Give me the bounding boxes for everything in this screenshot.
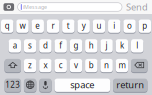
- button[interactable]: k: [116, 39, 128, 53]
- staticText: Send: [126, 1, 148, 13]
- staticText: r: [51, 20, 54, 31]
- staticText: 123: [5, 79, 20, 90]
- staticText: u: [96, 20, 101, 31]
- button[interactable]: Next keyboard: [24, 78, 36, 92]
- staticText: z: [28, 60, 32, 70]
- button[interactable]: g: [70, 39, 82, 53]
- staticText: v: [74, 60, 78, 70]
- staticText: k: [120, 40, 124, 51]
- button[interactable]: f: [54, 39, 67, 53]
- button[interactable]: Send: [122, 0, 152, 14]
- button[interactable]: v: [70, 58, 82, 73]
- staticText: i: [113, 20, 115, 31]
- staticText: a: [13, 40, 17, 51]
- button[interactable]: Shift: [4, 58, 21, 73]
- button[interactable]: l: [131, 39, 143, 53]
- button[interactable]: d: [39, 39, 52, 53]
- staticText: w: [19, 20, 25, 31]
- button[interactable]: a: [9, 39, 21, 53]
- staticText: iMessage: [23, 3, 47, 11]
- button[interactable]: j: [100, 39, 113, 53]
- staticText: n: [104, 60, 109, 70]
- staticText: b: [89, 60, 94, 70]
- staticText: q: [5, 20, 10, 31]
- button[interactable]: z: [24, 58, 36, 73]
- button[interactable]: y: [77, 19, 90, 33]
- button[interactable]: p: [139, 19, 151, 33]
- button[interactable]: x: [39, 58, 52, 73]
- button[interactable]: u: [93, 19, 105, 33]
- staticText: j: [106, 40, 108, 51]
- button[interactable]: s: [24, 39, 36, 53]
- button[interactable]: c: [54, 58, 67, 73]
- staticText: c: [59, 60, 63, 70]
- staticText: g: [73, 40, 78, 51]
- button[interactable]: space: [54, 78, 110, 92]
- staticText: p: [142, 20, 147, 31]
- staticText: e: [35, 20, 40, 31]
- staticText: x: [43, 60, 47, 70]
- staticText: space: [70, 79, 94, 91]
- staticText: d: [43, 40, 48, 51]
- staticText: s: [28, 40, 32, 51]
- staticText: o: [127, 20, 132, 31]
- button[interactable]: h: [85, 39, 97, 53]
- staticText: y: [82, 20, 86, 31]
- button[interactable]: n: [100, 58, 113, 73]
- staticText: m: [118, 60, 125, 70]
- button[interactable]: return: [113, 78, 147, 92]
- button[interactable]: q: [1, 19, 13, 33]
- button[interactable]: w: [16, 19, 29, 33]
- button[interactable]: 123: [4, 78, 21, 92]
- button[interactable]: m: [116, 58, 128, 73]
- staticText: t: [67, 20, 70, 31]
- button[interactable]: r: [47, 19, 59, 33]
- staticText: l: [136, 40, 138, 51]
- button[interactable]: Camera: [0, 0, 18, 14]
- button[interactable]: Delete: [131, 58, 147, 73]
- staticText: h: [89, 40, 94, 51]
- button[interactable]: i: [108, 19, 120, 33]
- staticText: f: [59, 40, 62, 51]
- button[interactable]: e: [31, 19, 44, 33]
- button[interactable]: t: [62, 19, 74, 33]
- button[interactable]: Dictation: [39, 78, 52, 92]
- button[interactable]: b: [85, 58, 97, 73]
- staticText: return: [116, 79, 144, 91]
- button[interactable]: o: [123, 19, 136, 33]
